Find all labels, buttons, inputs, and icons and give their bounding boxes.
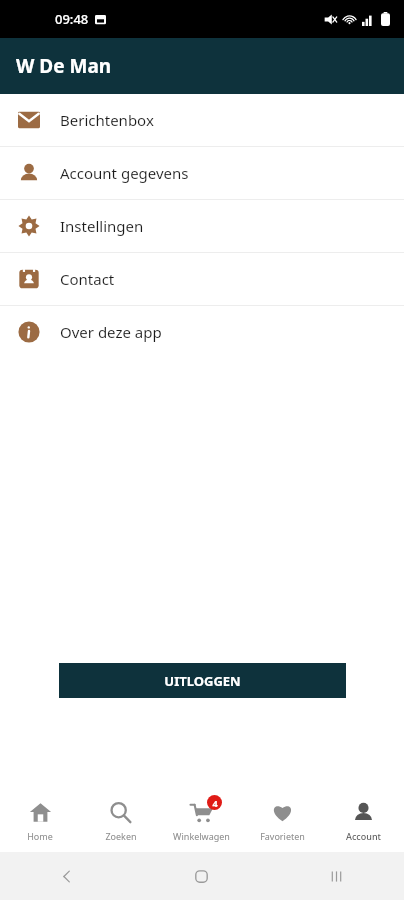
staticText: 4: [212, 797, 218, 809]
staticText: Account gegevens: [60, 163, 189, 183]
staticText: Winkelwagen: [173, 830, 230, 842]
button[interactable]: UITLOGGEN: [59, 663, 346, 698]
button[interactable]: Berichtenbox: [0, 94, 404, 146]
staticText: Contact: [60, 269, 115, 289]
staticText: Instellingen: [60, 216, 144, 236]
staticText: Favorieten: [260, 830, 305, 842]
button[interactable]: Favorieten: [242, 790, 323, 852]
button[interactable]: 4: [161, 790, 242, 852]
button[interactable]: Back: [0, 852, 134, 900]
button[interactable]: Account: [323, 790, 404, 852]
staticText: Home: [27, 830, 53, 842]
button[interactable]: Recent apps: [269, 852, 404, 900]
button[interactable]: Home: [0, 790, 80, 852]
staticText: W De Man: [16, 53, 112, 79]
staticText: 09:48: [55, 10, 89, 28]
staticText: Account: [346, 830, 381, 842]
button[interactable]: Zoeken: [80, 790, 161, 852]
staticText: Zoeken: [105, 830, 137, 842]
staticText: Over deze app: [60, 322, 162, 342]
staticText: Berichtenbox: [60, 110, 154, 130]
button[interactable]: Contact: [0, 253, 404, 305]
button[interactable]: Account gegevens: [0, 147, 404, 199]
staticText: UITLOGGEN: [164, 672, 241, 690]
button[interactable]: Instellingen: [0, 200, 404, 252]
button[interactable]: Home: [134, 852, 269, 900]
button[interactable]: Over deze app: [0, 306, 404, 358]
